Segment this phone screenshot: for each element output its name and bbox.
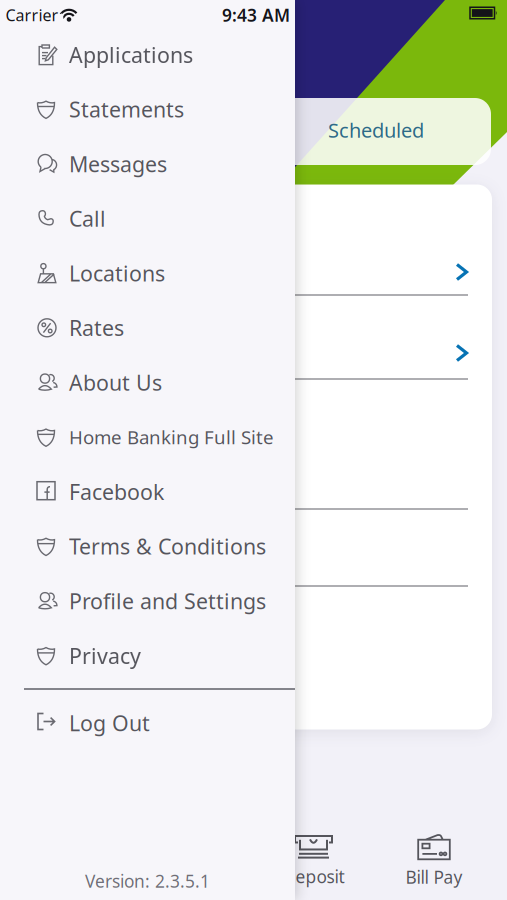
staticText: About Us	[69, 368, 162, 396]
staticText: Locations	[69, 259, 165, 287]
staticText: Facebook	[69, 477, 164, 506]
button[interactable]: Accounts	[16, 834, 128, 888]
staticText: Bill Pay	[405, 865, 462, 888]
button[interactable]: Select account	[455, 344, 469, 362]
button[interactable]: Privacy	[36, 641, 292, 670]
button[interactable]: Deposit	[257, 834, 369, 888]
staticText: Call	[69, 204, 106, 233]
button[interactable]: Messages	[36, 150, 292, 178]
staticText: Log Out	[69, 709, 150, 737]
staticText: Statements	[69, 95, 184, 123]
button[interactable]: Log Out	[36, 709, 292, 737]
button[interactable]: Call	[36, 204, 292, 233]
button[interactable]: Bill Pay	[378, 833, 490, 888]
staticText: Version: 2.3.5.1	[85, 869, 210, 892]
button[interactable]: Facebook	[36, 477, 292, 506]
staticText: Applications	[69, 40, 193, 69]
button[interactable]: Transfer	[137, 834, 249, 888]
button[interactable]: Applications	[36, 40, 292, 69]
button[interactable]: Terms & Conditions	[36, 532, 292, 560]
button[interactable]: Profile and Settings	[36, 587, 292, 615]
staticText: Profile and Settings	[69, 587, 266, 615]
staticText: 9:43 AM	[222, 3, 290, 26]
staticText: Home Banking Full Site	[69, 425, 274, 449]
staticText: Privacy	[69, 641, 141, 670]
button[interactable]: Home Banking Full Site	[36, 425, 292, 449]
staticText: Terms & Conditions	[69, 532, 266, 560]
button[interactable]: Rates	[36, 314, 292, 342]
button[interactable]: Select account	[455, 263, 469, 281]
staticText: Accounts	[36, 865, 109, 888]
staticText: Messages	[69, 150, 167, 178]
staticText: Transfer	[159, 865, 227, 888]
button[interactable]: About Us	[36, 368, 292, 396]
staticText: Carrier	[5, 4, 58, 26]
button[interactable]: Locations	[36, 259, 292, 287]
button[interactable]: Statements	[36, 95, 292, 123]
staticText: Rates	[69, 314, 124, 342]
button[interactable]: Scheduled	[328, 117, 424, 143]
staticText: Deposit	[282, 865, 344, 888]
staticText: Scheduled	[328, 117, 424, 143]
